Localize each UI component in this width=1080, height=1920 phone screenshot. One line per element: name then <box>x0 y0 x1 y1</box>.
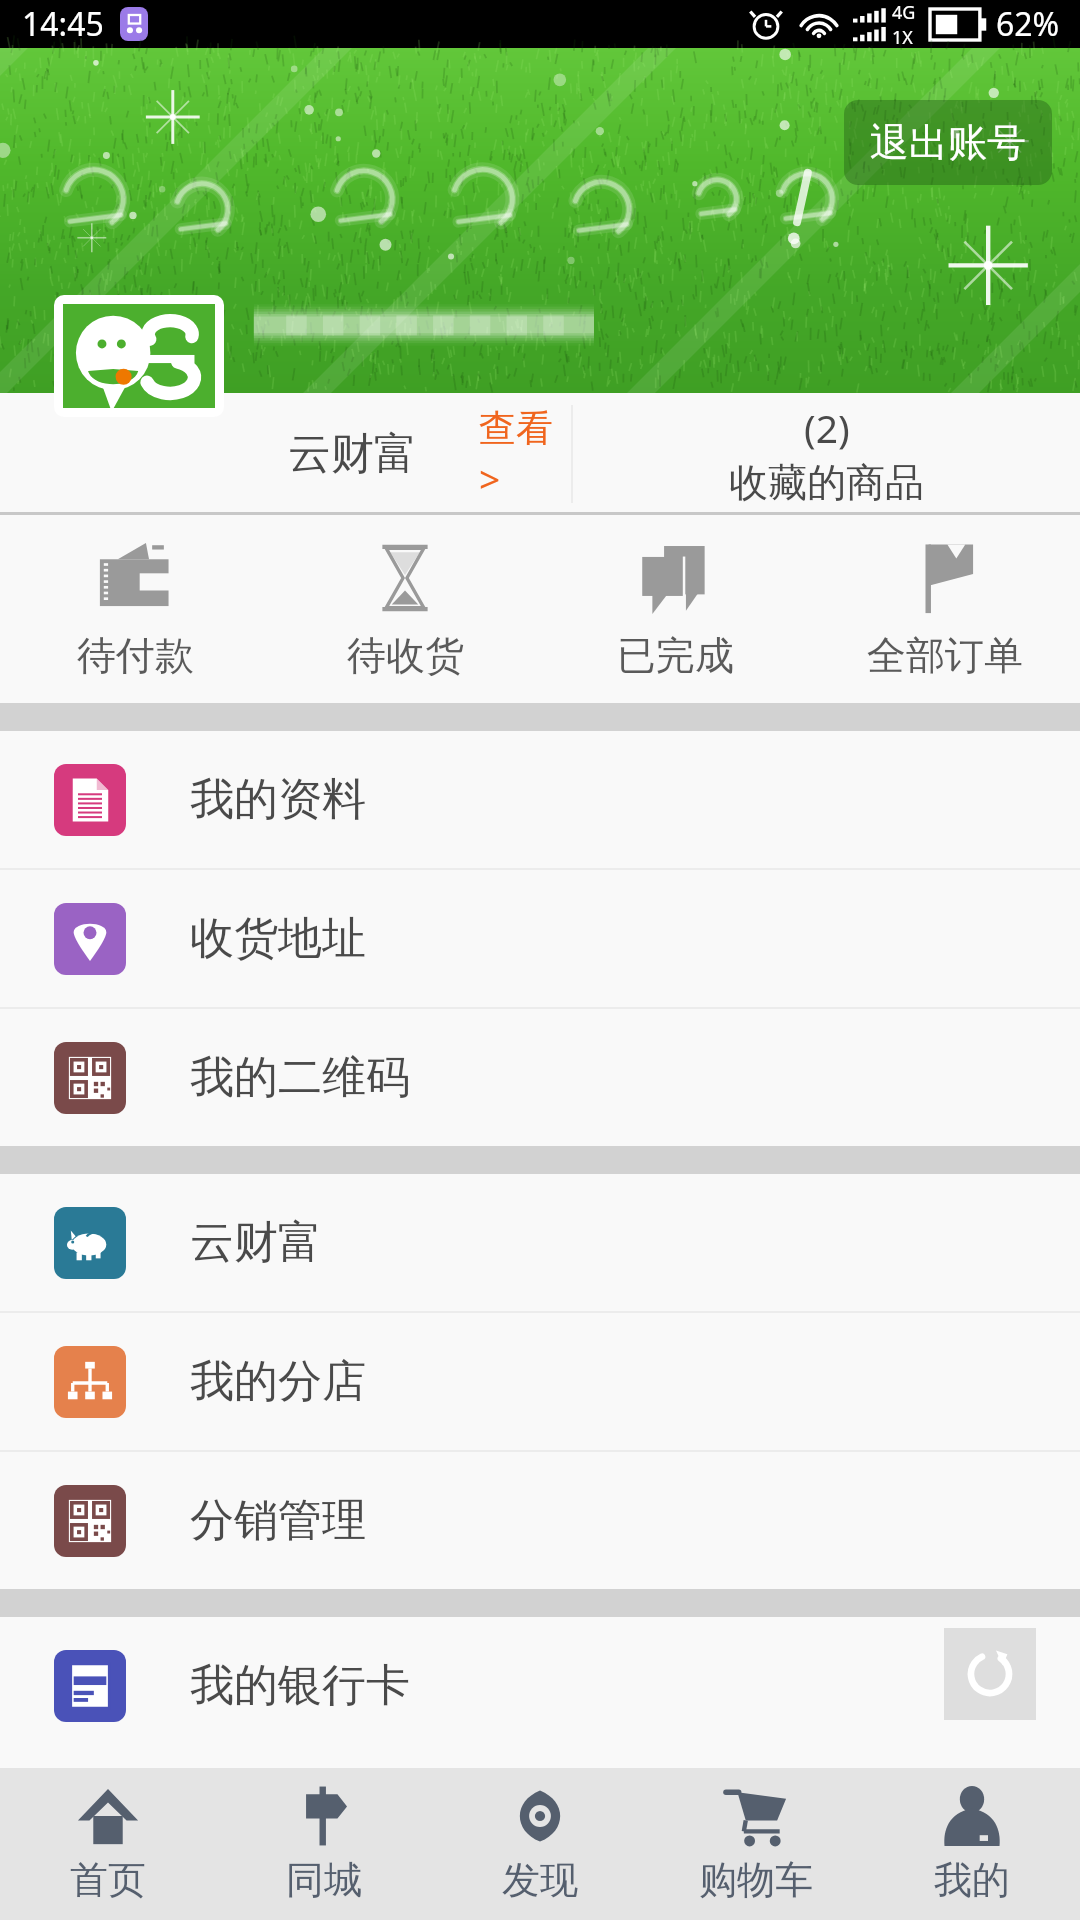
button[interactable]: 发现 <box>432 1768 648 1920</box>
button[interactable]: 我的 <box>864 1768 1080 1920</box>
button[interactable]: 我的银行卡 <box>0 1617 1080 1754</box>
button[interactable]: 待付款 <box>0 515 270 703</box>
staticText: 收货地址 <box>190 911 366 966</box>
staticText: 14:45 <box>22 2 104 46</box>
staticText: 购物车 <box>699 1856 813 1904</box>
staticText: 云财富 <box>288 427 417 481</box>
button[interactable]: 云财富 <box>0 1174 1080 1311</box>
button[interactable] <box>63 304 215 408</box>
staticText: 我的分店 <box>190 1354 366 1409</box>
staticText: 首页 <box>70 1856 146 1904</box>
button[interactable]: 待收货 <box>270 515 540 703</box>
staticText: 已完成 <box>617 631 734 680</box>
staticText: 4G <box>892 0 916 25</box>
staticText: 待收货 <box>347 631 464 680</box>
button[interactable]: 退出账号 <box>844 100 1052 185</box>
button[interactable]: 同城 <box>216 1768 432 1920</box>
staticText: 发现 <box>502 1856 578 1904</box>
staticText: 62% <box>996 2 1060 46</box>
button[interactable]: 分销管理 <box>0 1452 1080 1589</box>
button[interactable]: 我的分店 <box>0 1313 1080 1450</box>
button[interactable]: 首页 <box>0 1768 216 1920</box>
button[interactable]: 全部订单 <box>810 515 1080 703</box>
button[interactable]: 我的二维码 <box>0 1009 1080 1146</box>
staticText: 查看> <box>479 405 571 503</box>
staticText: 我的二维码 <box>190 1050 410 1105</box>
staticText: 我的资料 <box>190 772 366 827</box>
staticText: 云财富 <box>190 1215 322 1270</box>
staticText: 同城 <box>286 1856 362 1904</box>
staticText: 全部订单 <box>867 631 1023 680</box>
staticText: 收藏的商品 <box>729 458 924 507</box>
button[interactable]: 购物车 <box>648 1768 864 1920</box>
staticText: (2) <box>804 401 850 454</box>
staticText: 待付款 <box>77 631 194 680</box>
staticText: 分销管理 <box>190 1493 366 1548</box>
button[interactable]: 云财富 <box>0 393 571 515</box>
staticText: 我的 <box>934 1856 1010 1904</box>
button[interactable]: 我的资料 <box>0 731 1080 868</box>
staticText: 退出账号 <box>870 118 1026 167</box>
button[interactable]: 收货地址 <box>0 870 1080 1007</box>
button[interactable]: (2) <box>573 393 1080 515</box>
button[interactable]: 已完成 <box>540 515 810 703</box>
staticText: 1X <box>892 25 913 48</box>
staticText: 我的银行卡 <box>190 1658 410 1713</box>
button[interactable]: Refresh <box>944 1628 1036 1720</box>
